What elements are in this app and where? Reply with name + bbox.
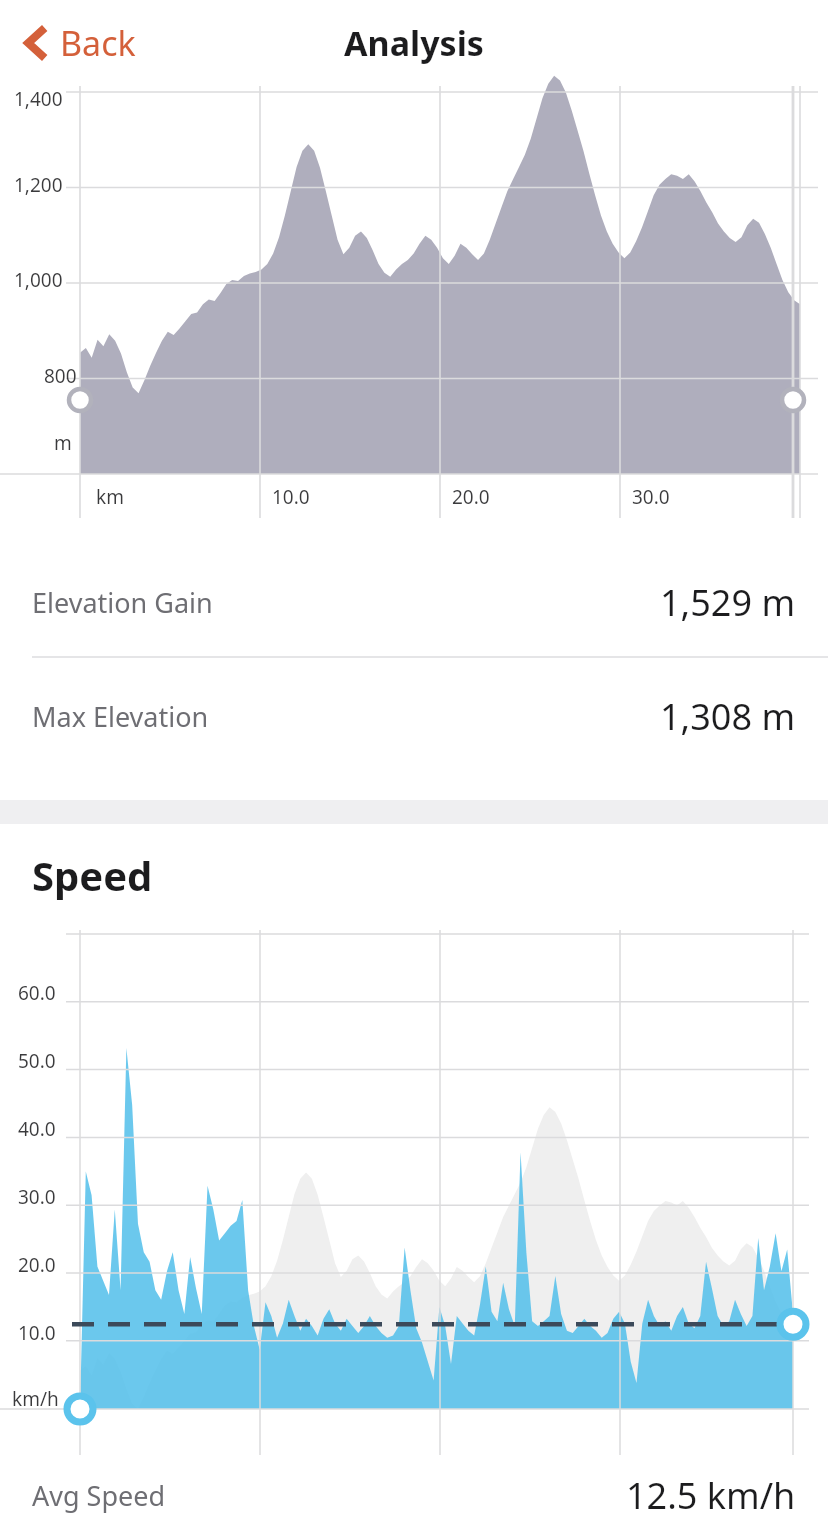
staticText: 12.5 km/h: [626, 1471, 796, 1520]
staticText: 20.0: [452, 484, 490, 506]
staticText: 50.0: [18, 1048, 56, 1074]
staticText: 60.0: [18, 980, 56, 1006]
staticText: 20.0: [18, 1252, 56, 1278]
staticText: Analysis: [344, 20, 484, 66]
staticText: Avg Speed: [32, 1477, 166, 1514]
button[interactable]: Elevation Gain: [0, 548, 828, 656]
staticText: 800: [44, 363, 77, 389]
staticText: 1,000: [14, 267, 63, 293]
staticText: Max Elevation: [32, 698, 209, 735]
staticText: 1,200: [14, 172, 63, 198]
staticText: km/h: [12, 1386, 59, 1412]
button[interactable]: Back: [0, 0, 154, 86]
staticText: 30.0: [632, 484, 670, 506]
staticText: km: [96, 484, 124, 506]
staticText: Elevation Gain: [32, 584, 213, 621]
staticText: 30.0: [18, 1184, 56, 1210]
staticText: 10.0: [272, 484, 310, 506]
staticText: 10.0: [18, 1320, 56, 1346]
staticText: m: [54, 430, 72, 456]
staticText: Back: [60, 20, 136, 66]
button[interactable]: Max Elevation: [0, 658, 828, 774]
staticText: 1,529 m: [660, 578, 796, 627]
button[interactable]: Avg Speed: [0, 1458, 828, 1532]
staticText: 1,400: [14, 86, 63, 112]
staticText: Speed: [32, 848, 153, 902]
staticText: 1,308 m: [660, 692, 796, 741]
staticText: 40.0: [18, 1116, 56, 1142]
